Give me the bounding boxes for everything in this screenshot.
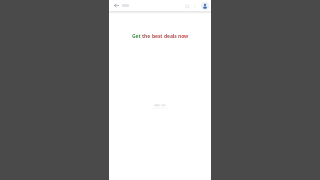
staticText: now	[178, 33, 189, 40]
button[interactable]: Back	[112, 1, 121, 10]
staticText: deals	[164, 33, 177, 40]
staticText: best	[152, 33, 163, 40]
button[interactable]: Account	[200, 1, 209, 10]
button[interactable]: Search	[183, 2, 191, 10]
staticText: Get	[132, 33, 141, 40]
button[interactable]: Get	[132, 33, 189, 40]
staticText: the	[142, 33, 151, 40]
